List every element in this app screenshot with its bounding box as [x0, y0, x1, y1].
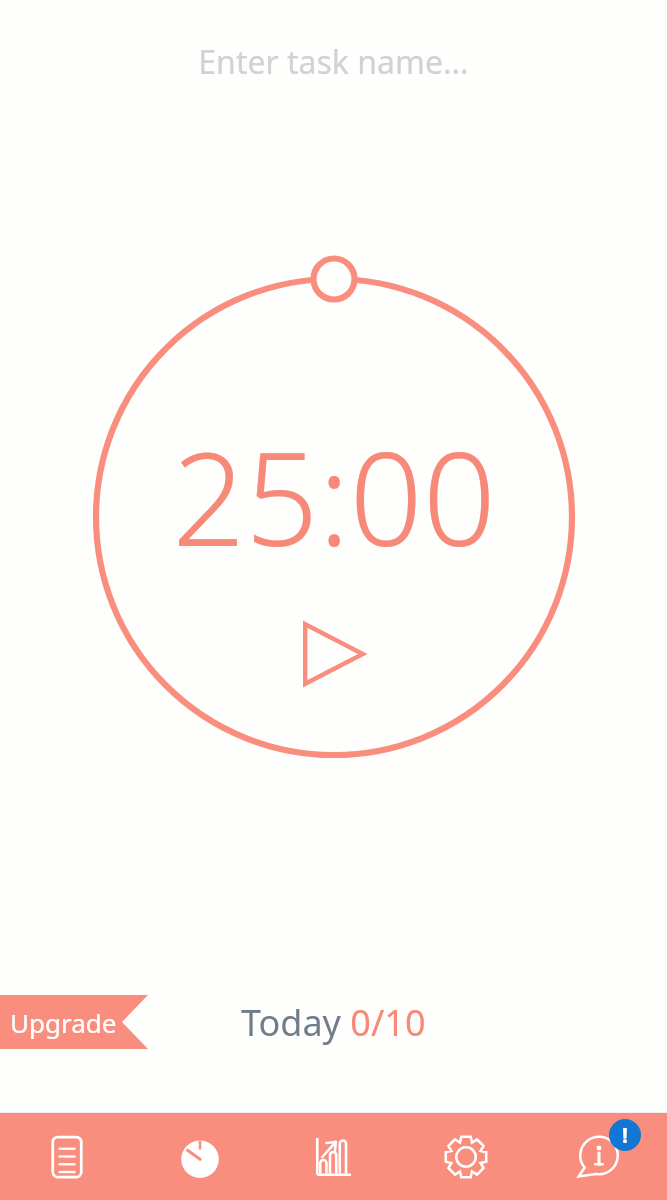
button[interactable]: Start timer — [293, 613, 375, 695]
staticText: Upgrade — [10, 1005, 117, 1040]
button[interactable]: Timer — [133, 1113, 266, 1200]
staticText: Enter task name... — [24, 40, 643, 84]
staticText: Today 0/10 — [241, 998, 426, 1047]
button[interactable]: Enter task name... — [0, 34, 667, 90]
staticText: ! — [622, 1121, 628, 1150]
button[interactable]: Statistics — [266, 1113, 399, 1200]
button[interactable]: Tasks — [0, 1113, 133, 1200]
button[interactable]: Today 0/10 — [233, 995, 434, 1049]
button[interactable]: Info — [532, 1113, 665, 1200]
staticText: 25:00 — [82, 409, 586, 583]
button[interactable]: Timer dial, 25:00 — [82, 265, 586, 769]
button[interactable]: Upgrade — [0, 995, 148, 1049]
button[interactable]: Settings — [399, 1113, 532, 1200]
